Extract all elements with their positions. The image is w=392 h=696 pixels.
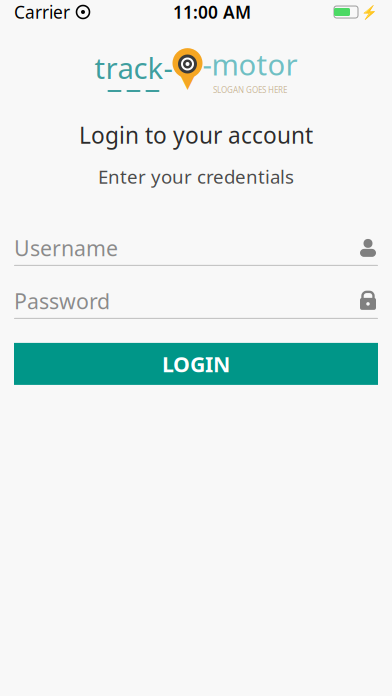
staticText: -motor [202, 45, 297, 84]
staticText: LOGIN [162, 350, 230, 378]
staticText: Login to your account [79, 120, 313, 150]
button[interactable]: LOGIN [14, 343, 378, 385]
staticText: Password [14, 287, 110, 315]
staticText: Carrier [14, 0, 70, 23]
staticText: 11:00 AM [173, 0, 251, 23]
staticText: Enter your credentials [98, 164, 294, 189]
staticText: SLOGAN GOES HERE [213, 85, 287, 95]
staticText: Username [14, 234, 118, 262]
staticText: ▼ [180, 69, 195, 92]
staticText: track- [94, 48, 172, 87]
staticText: ⚡ [361, 4, 378, 20]
